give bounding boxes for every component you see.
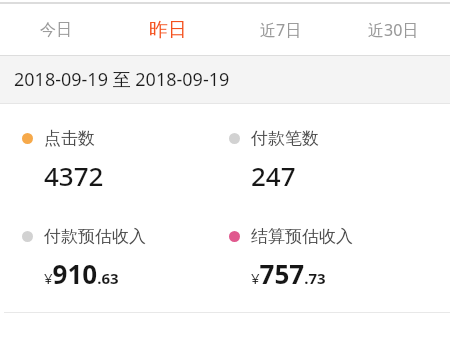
button[interactable]: 近30日 bbox=[337, 4, 450, 55]
staticText: 247 bbox=[251, 158, 296, 193]
staticText: 付款预估收入 bbox=[44, 226, 146, 247]
button[interactable]: 2018-09-19 至 2018-09-19 bbox=[0, 56, 450, 103]
staticText: 近30日 bbox=[368, 19, 419, 41]
button[interactable]: 近7日 bbox=[224, 4, 337, 55]
button[interactable]: 付款笔数 bbox=[229, 128, 450, 193]
button[interactable]: 点击数 bbox=[22, 128, 225, 193]
staticText: 2018-09-19 至 2018-09-19 bbox=[14, 67, 230, 92]
staticText: 结算预估收入 bbox=[251, 226, 353, 247]
button[interactable]: 昨日 bbox=[112, 4, 224, 55]
button[interactable]: 付款预估收入 bbox=[22, 226, 225, 291]
staticText: 昨日 bbox=[149, 18, 187, 42]
button[interactable]: 今日 bbox=[0, 4, 112, 55]
staticText: 点击数 bbox=[44, 128, 95, 149]
button[interactable]: 结算预估收入 bbox=[229, 226, 450, 291]
staticText: 近7日 bbox=[260, 19, 302, 41]
staticText: 4372 bbox=[44, 158, 104, 193]
staticText: ¥910.63 bbox=[44, 256, 119, 291]
staticText: ¥757.73 bbox=[251, 256, 326, 291]
staticText: 今日 bbox=[40, 20, 72, 40]
staticText: 付款笔数 bbox=[251, 128, 319, 149]
